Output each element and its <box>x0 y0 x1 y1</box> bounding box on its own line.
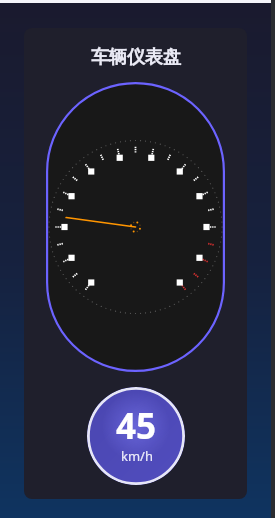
staticText: km/h <box>121 447 153 465</box>
staticText: 车辆仪表盘 <box>91 46 181 69</box>
button[interactable]: Current speed 45 kilometres per hour <box>87 387 185 485</box>
staticText: 45 <box>116 402 157 450</box>
